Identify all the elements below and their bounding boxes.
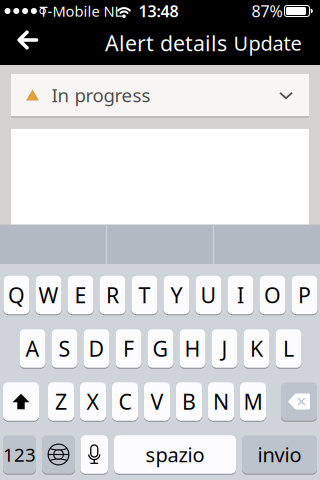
staticText: I bbox=[237, 281, 244, 309]
staticText: Q bbox=[8, 281, 25, 309]
button[interactable]: spazio bbox=[114, 435, 236, 474]
staticText: 123 bbox=[3, 442, 36, 467]
staticText: A bbox=[25, 334, 39, 363]
staticText: T-Mobile NL bbox=[39, 1, 122, 21]
button[interactable]: X bbox=[80, 382, 106, 421]
button[interactable]: O bbox=[259, 275, 285, 315]
button[interactable]: Dictate bbox=[80, 435, 108, 474]
button[interactable]: S bbox=[51, 329, 77, 368]
staticText: R bbox=[106, 281, 119, 309]
button[interactable]: Next keyboard bbox=[42, 435, 75, 474]
button[interactable]: Update bbox=[229, 21, 305, 65]
staticText: Z bbox=[55, 387, 67, 416]
button[interactable]: F bbox=[115, 329, 141, 368]
staticText: X bbox=[86, 387, 99, 416]
staticText: 13:48 bbox=[138, 0, 178, 22]
button[interactable]: A bbox=[19, 329, 45, 368]
button[interactable]: Shift bbox=[3, 382, 39, 421]
staticText: invio bbox=[257, 441, 301, 468]
staticText: 87% bbox=[251, 0, 282, 22]
staticText: S bbox=[58, 334, 70, 363]
staticText: V bbox=[150, 387, 163, 416]
staticText: Y bbox=[170, 281, 182, 309]
staticText: M bbox=[243, 387, 262, 416]
button[interactable]: V bbox=[144, 382, 170, 421]
button[interactable]: E bbox=[67, 275, 93, 315]
button[interactable]: Back bbox=[4, 19, 48, 63]
button[interactable]: 123 bbox=[3, 435, 36, 474]
button[interactable]: R bbox=[99, 275, 125, 315]
button[interactable]: C bbox=[112, 382, 138, 421]
staticText: U bbox=[200, 281, 216, 309]
button[interactable]: B bbox=[176, 382, 202, 421]
staticText: H bbox=[184, 334, 200, 363]
button[interactable]: invio bbox=[242, 435, 317, 474]
staticText: Alert details bbox=[105, 29, 227, 57]
button[interactable]: N bbox=[208, 382, 234, 421]
staticText: D bbox=[88, 334, 104, 363]
staticText: E bbox=[74, 281, 86, 309]
staticText: T bbox=[138, 281, 150, 309]
button[interactable]: W bbox=[35, 275, 61, 315]
button[interactable]: Delete bbox=[281, 382, 317, 421]
button[interactable]: P bbox=[291, 275, 317, 315]
staticText: P bbox=[298, 281, 311, 309]
staticText: B bbox=[182, 387, 196, 416]
button[interactable]: J bbox=[211, 329, 237, 368]
staticText: O bbox=[264, 281, 281, 309]
button[interactable]: Notes text field bbox=[11, 129, 309, 225]
button[interactable]: D bbox=[83, 329, 109, 368]
button[interactable]: K bbox=[243, 329, 269, 368]
staticText: G bbox=[152, 334, 168, 363]
button[interactable]: M bbox=[240, 382, 266, 421]
staticText: W bbox=[38, 281, 58, 309]
button[interactable]: L bbox=[275, 329, 301, 368]
button[interactable]: In progress bbox=[11, 74, 309, 117]
staticText: K bbox=[250, 334, 263, 363]
staticText: F bbox=[123, 334, 134, 363]
button[interactable]: Q bbox=[3, 275, 29, 315]
staticText: spazio bbox=[145, 441, 204, 468]
button[interactable]: Z bbox=[48, 382, 74, 421]
staticText: L bbox=[283, 334, 294, 363]
button[interactable]: G bbox=[147, 329, 173, 368]
button[interactable]: I bbox=[227, 275, 253, 315]
staticText: In progress bbox=[51, 83, 150, 107]
staticText: C bbox=[118, 387, 131, 416]
button[interactable]: T bbox=[131, 275, 157, 315]
button[interactable]: U bbox=[195, 275, 221, 315]
staticText: N bbox=[213, 387, 229, 416]
button[interactable]: Y bbox=[163, 275, 189, 315]
staticText: J bbox=[221, 334, 227, 363]
button[interactable]: H bbox=[179, 329, 205, 368]
staticText: Update bbox=[233, 30, 301, 56]
